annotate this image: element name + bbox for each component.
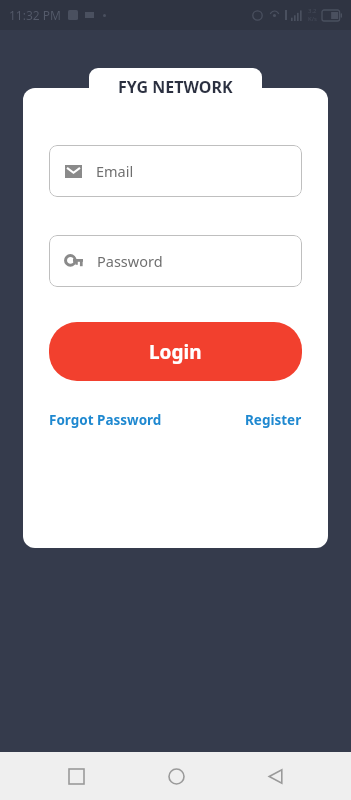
staticText: Login (149, 339, 202, 365)
staticText: Password (97, 251, 163, 271)
staticText: Forgot Password (49, 411, 162, 429)
button[interactable]: Home (153, 753, 199, 799)
button[interactable]: Login (49, 322, 302, 381)
staticText: 3.2 (308, 7, 317, 15)
staticText: Register (245, 411, 302, 429)
staticText: 11:32 PM (9, 7, 61, 23)
button[interactable]: FYG NETWORK (89, 68, 262, 106)
staticText: K/s (308, 15, 317, 23)
staticText: FYG NETWORK (118, 76, 233, 98)
button[interactable]: Register (245, 407, 302, 433)
button[interactable]: Password (49, 235, 302, 287)
button[interactable]: Forgot Password (49, 407, 162, 433)
button[interactable]: Back (252, 753, 298, 799)
button[interactable]: Email (49, 145, 302, 197)
button[interactable]: Recent apps (53, 753, 99, 799)
staticText: Email (96, 161, 134, 181)
